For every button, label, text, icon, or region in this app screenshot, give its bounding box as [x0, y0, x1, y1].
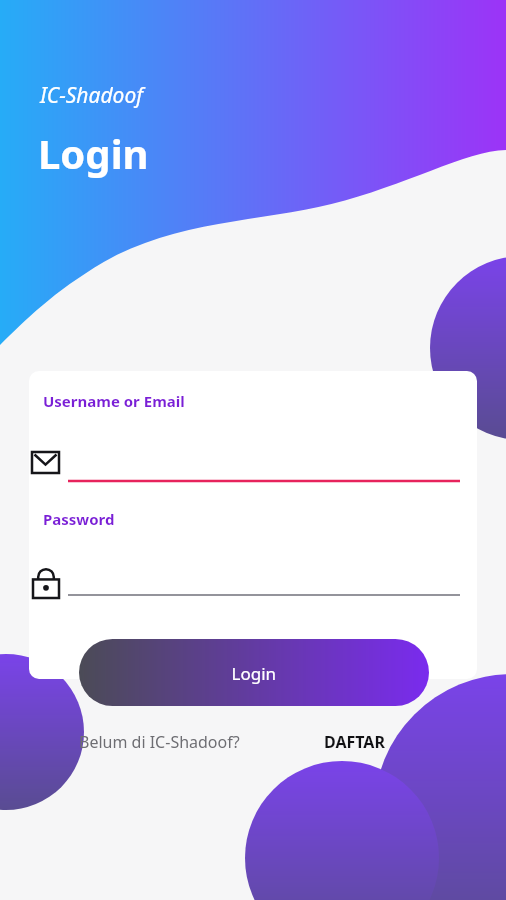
- button[interactable]: [78, 728, 304, 758]
- button[interactable]: Daftar: [320, 728, 410, 758]
- button[interactable]: [79, 639, 429, 706]
